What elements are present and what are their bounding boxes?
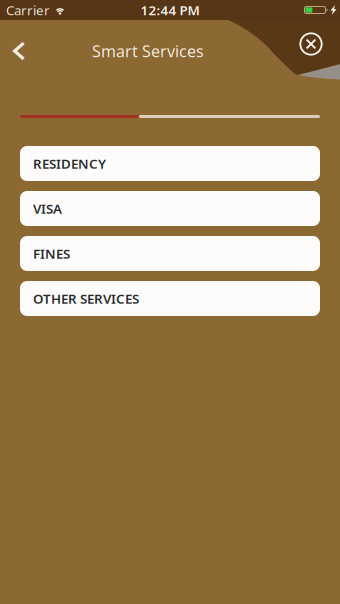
staticText: Carrier bbox=[6, 1, 50, 19]
staticText: OTHER SERVICES bbox=[33, 290, 139, 307]
staticText: Smart Services bbox=[92, 40, 204, 62]
button[interactable]: Close bbox=[294, 27, 328, 61]
staticText: 12:44 PM bbox=[140, 1, 199, 19]
button[interactable]: RESIDENCY bbox=[20, 146, 320, 181]
button[interactable]: OTHER SERVICES bbox=[20, 281, 320, 316]
button[interactable]: Back bbox=[0, 29, 38, 73]
staticText: FINES bbox=[33, 245, 70, 262]
staticText: RESIDENCY bbox=[33, 155, 106, 172]
staticText: VISA bbox=[33, 200, 62, 217]
button[interactable]: FINES bbox=[20, 236, 320, 271]
button[interactable]: VISA bbox=[20, 191, 320, 226]
